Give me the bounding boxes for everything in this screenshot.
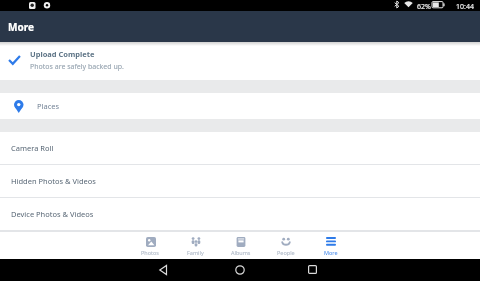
button[interactable]: More — [308, 232, 353, 259]
staticText: Hidden Photos & Videos — [11, 176, 96, 186]
staticText: 62% — [417, 2, 431, 12]
button[interactable]: Albums — [218, 232, 263, 259]
staticText: More — [324, 249, 338, 256]
button[interactable]: Device Photos & Videos — [0, 198, 480, 231]
staticText: Upload Complete — [30, 49, 95, 59]
staticText: Device Photos & Videos — [11, 209, 94, 219]
staticText: Photos are safely backed up. — [30, 62, 124, 72]
button[interactable] — [235, 265, 245, 275]
staticText: People — [277, 249, 295, 256]
staticText: Photos — [141, 249, 160, 256]
button[interactable]: Places — [0, 93, 480, 119]
button[interactable]: Upload Complete — [0, 42, 480, 80]
button[interactable]: Hidden Photos & Videos — [0, 165, 480, 198]
staticText: Places — [37, 101, 60, 111]
button[interactable]: Family — [173, 232, 218, 259]
staticText: More — [8, 20, 34, 34]
button[interactable] — [159, 265, 168, 275]
staticText: Camera Roll — [11, 143, 54, 153]
staticText: 10:44 — [456, 2, 474, 12]
staticText: Family — [187, 249, 204, 256]
button[interactable]: Camera Roll — [0, 132, 480, 165]
button[interactable]: Photos — [128, 232, 173, 259]
button[interactable]: People — [263, 232, 308, 259]
button[interactable] — [308, 265, 317, 274]
staticText: Albums — [231, 249, 251, 256]
